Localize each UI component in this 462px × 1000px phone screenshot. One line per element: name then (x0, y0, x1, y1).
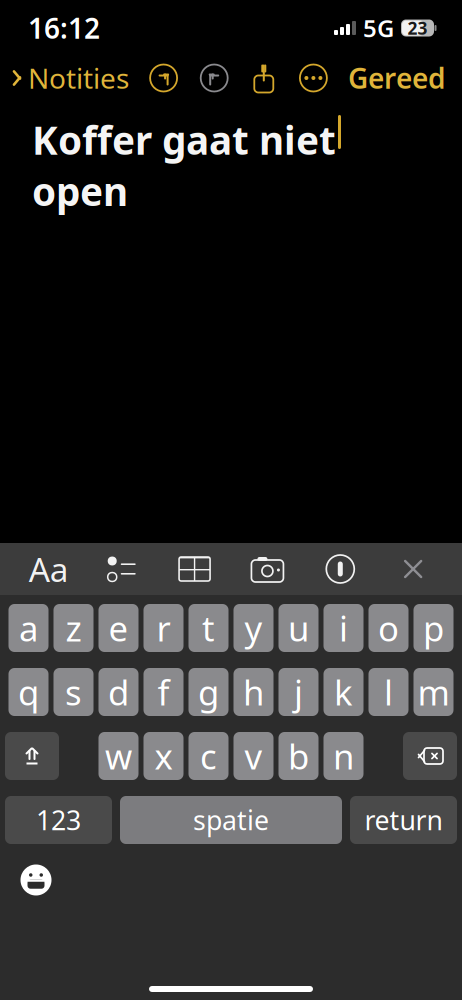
button[interactable]: y (233, 604, 273, 652)
button[interactable]: w (98, 732, 138, 780)
button[interactable]: m (413, 668, 453, 716)
button[interactable]: j (278, 668, 318, 716)
button[interactable]: Text format (25, 547, 73, 591)
staticText: b (288, 733, 309, 779)
staticText: u (288, 605, 309, 651)
button[interactable]: o (368, 604, 408, 652)
button[interactable]: p (413, 604, 453, 652)
staticText: j (294, 669, 303, 715)
button[interactable]: g (188, 668, 228, 716)
staticText: t (202, 605, 215, 651)
staticText: l (384, 669, 393, 715)
staticText: i (339, 605, 348, 651)
button[interactable]: Emoji keyboard (14, 858, 58, 902)
button[interactable]: Checklist (98, 547, 146, 591)
staticText: g (198, 669, 219, 715)
staticText: h (243, 669, 264, 715)
staticText: 16:12 (28, 9, 100, 47)
button[interactable]: e (98, 604, 138, 652)
button[interactable]: Share (249, 62, 279, 93)
button[interactable]: f (143, 668, 183, 716)
button[interactable]: i (323, 604, 363, 652)
button[interactable]: n (323, 732, 363, 780)
staticText: z (65, 605, 81, 651)
button[interactable]: q (8, 668, 48, 716)
button[interactable]: Notities (0, 53, 129, 103)
button[interactable]: Table (171, 547, 219, 591)
button[interactable]: l (368, 668, 408, 716)
staticText: 5G (363, 12, 394, 44)
staticText: y (244, 605, 262, 651)
button[interactable]: v (233, 732, 273, 780)
button[interactable]: r (143, 604, 183, 652)
button[interactable]: 123 (5, 796, 112, 844)
staticText: Koffer gaat niet open (32, 114, 336, 217)
button[interactable]: Gereed (348, 53, 462, 103)
button[interactable]: a (8, 604, 48, 652)
button[interactable]: h (233, 668, 273, 716)
staticText: a (19, 605, 38, 651)
staticText: Gereed (348, 59, 446, 97)
staticText: v (244, 733, 262, 779)
button[interactable]: s (53, 668, 93, 716)
staticText: Aa (29, 547, 69, 591)
button[interactable]: Markup (316, 547, 364, 591)
staticText: o (378, 605, 399, 651)
staticText: x (154, 733, 172, 779)
button[interactable]: t (188, 604, 228, 652)
button[interactable]: Backspace (403, 732, 457, 780)
button[interactable]: x (143, 732, 183, 780)
staticText: s (65, 669, 82, 715)
staticText: spatie (193, 802, 269, 838)
button[interactable]: Close keyboard (389, 547, 437, 591)
staticText: return (364, 802, 442, 838)
button[interactable]: c (188, 732, 228, 780)
staticText: p (423, 605, 444, 651)
button[interactable]: d (98, 668, 138, 716)
staticText: q (18, 669, 39, 715)
staticText: 123 (36, 802, 81, 838)
staticText: w (105, 733, 132, 779)
button[interactable]: Camera (243, 547, 291, 591)
staticText: Notities (28, 59, 129, 97)
button[interactable]: z (53, 604, 93, 652)
staticText: f (157, 669, 169, 715)
button[interactable]: Redo (198, 62, 230, 94)
staticText: e (108, 605, 128, 651)
button[interactable]: k (323, 668, 363, 716)
staticText: c (200, 733, 217, 779)
button[interactable]: u (278, 604, 318, 652)
staticText: k (334, 669, 353, 715)
button[interactable]: More (297, 62, 329, 94)
button[interactable]: spatie (120, 796, 342, 844)
button[interactable]: Shift (5, 732, 59, 780)
staticText: r (156, 605, 170, 651)
staticText: m (417, 669, 449, 715)
staticText: d (108, 669, 129, 715)
staticText: n (333, 733, 354, 779)
staticText: 23 (407, 16, 427, 39)
button[interactable]: return (350, 796, 457, 844)
button[interactable]: Undo (148, 62, 180, 94)
button[interactable]: b (278, 732, 318, 780)
